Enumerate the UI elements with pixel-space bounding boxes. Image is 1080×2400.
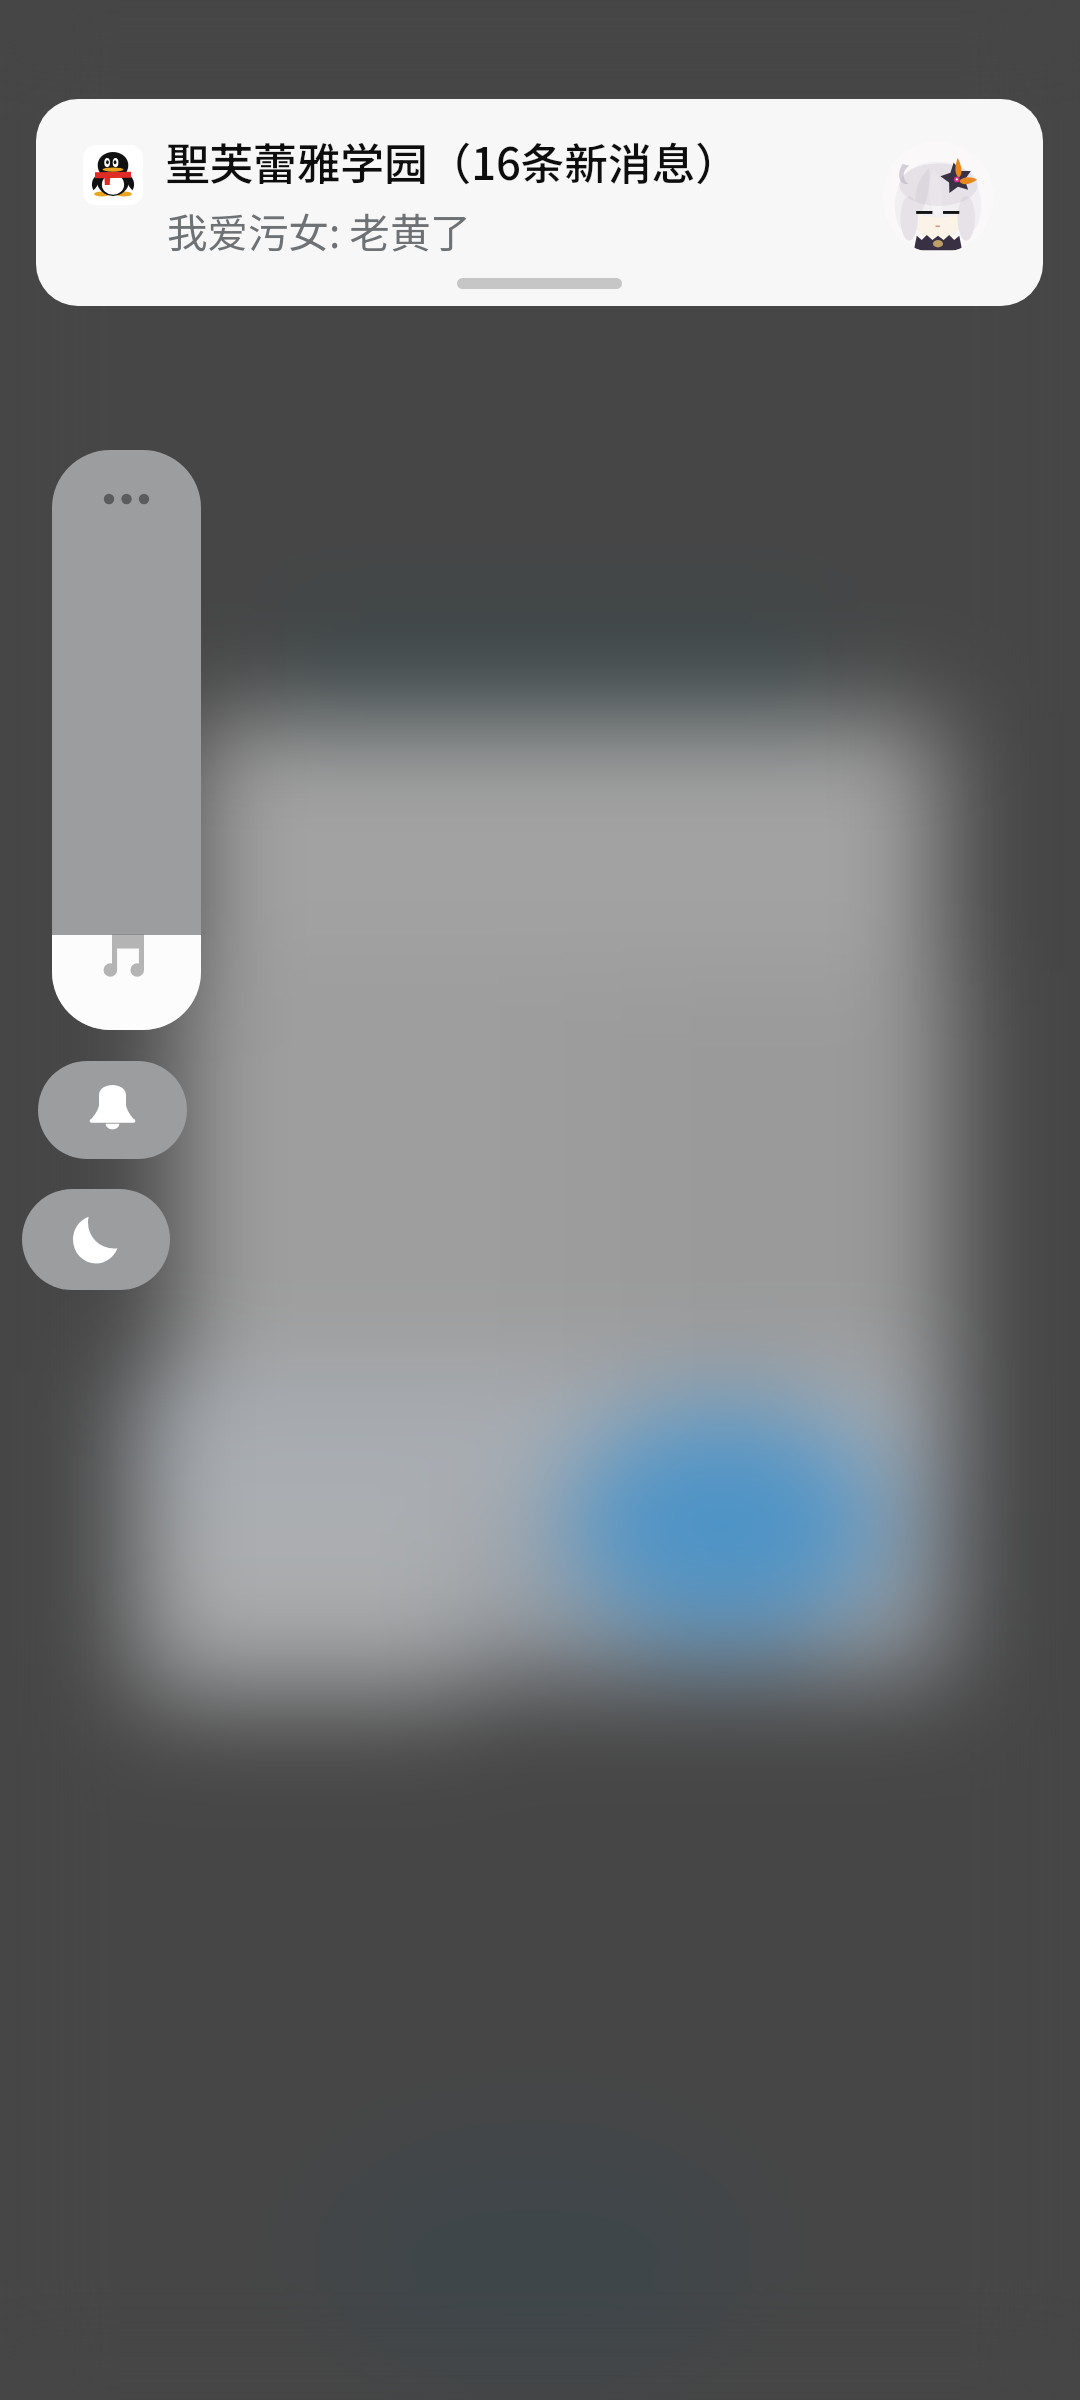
button[interactable]: Media volume xyxy=(52,450,201,1030)
button[interactable]: Do not disturb xyxy=(22,1189,170,1290)
staticText: 我爱污女: 老黄了 xyxy=(167,201,471,260)
button[interactable]: 聖芙蕾雅学园（16条新消息） xyxy=(36,99,1043,306)
button[interactable]: Ring mode xyxy=(38,1061,187,1159)
staticText: 聖芙蕾雅学园（16条新消息） xyxy=(166,129,739,192)
